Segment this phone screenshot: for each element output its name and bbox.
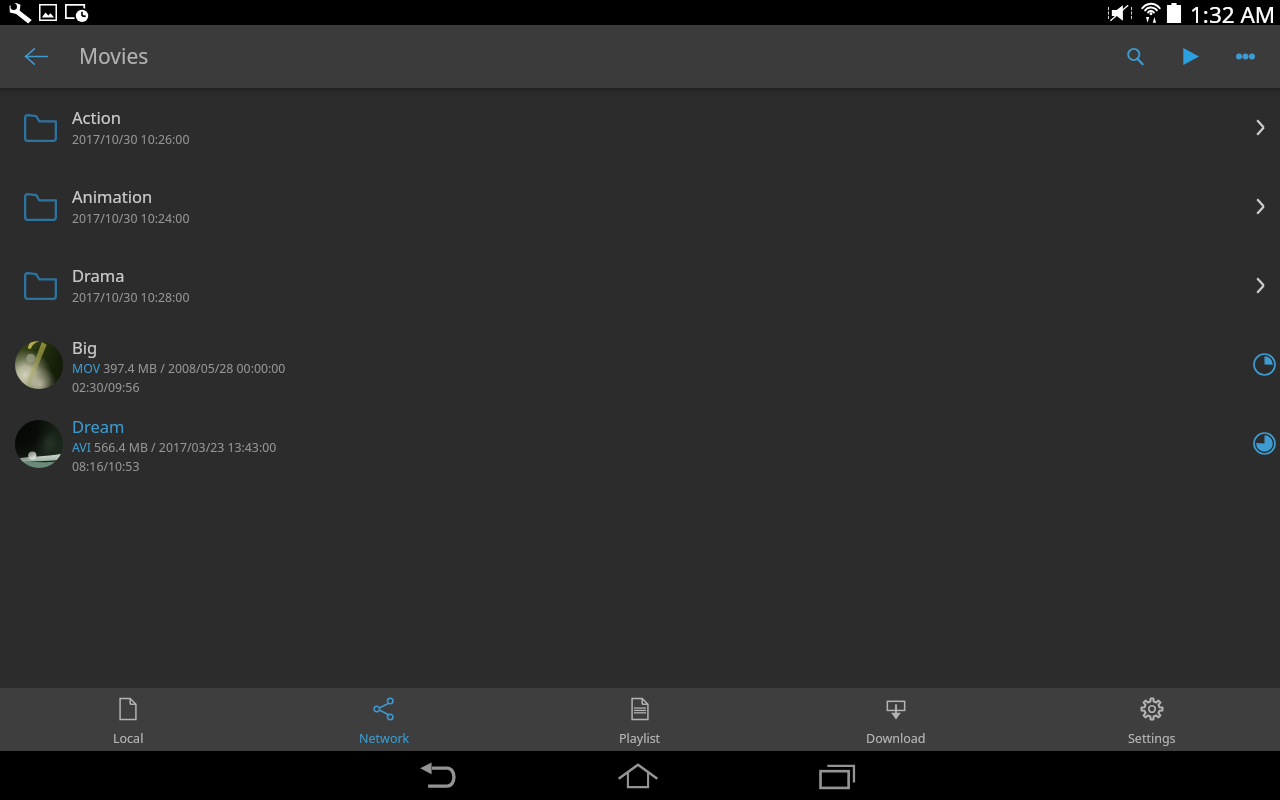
staticText: Movies	[79, 42, 149, 71]
button[interactable]: Play	[1156, 25, 1210, 88]
button[interactable]: Recent apps	[810, 751, 866, 800]
button[interactable]: Drama	[0, 246, 1280, 325]
button[interactable]: Back	[410, 751, 466, 800]
button[interactable]: Animation	[0, 167, 1280, 246]
button[interactable]: Dream	[0, 404, 1280, 483]
staticText: 2017/10/30 10:28:00	[72, 289, 190, 306]
button[interactable]: Playlist	[512, 688, 768, 751]
staticText: 2017/10/30 10:24:00	[72, 210, 190, 227]
button[interactable]: More options	[1210, 25, 1280, 88]
staticText: 2017/10/30 10:26:00	[72, 131, 190, 148]
staticText: Dream	[72, 415, 125, 437]
staticText: 08:16/10:53	[72, 458, 140, 475]
staticText: Animation	[72, 185, 153, 207]
staticText: Local	[113, 730, 144, 747]
staticText: AVI 566.4 MB / 2017/03/23 13:43:00	[72, 439, 277, 456]
staticText: 1:32 AM	[1190, 0, 1276, 24]
button[interactable]: Settings	[1024, 688, 1280, 751]
staticText: Playlist	[619, 730, 661, 747]
button[interactable]: Local	[0, 688, 256, 751]
button[interactable]: Network	[256, 688, 512, 751]
button[interactable]: Big	[0, 325, 1280, 404]
button[interactable]: Download	[768, 688, 1024, 751]
button[interactable]: Back	[0, 25, 62, 88]
staticText: Network	[359, 730, 410, 747]
staticText: Big	[72, 336, 98, 358]
staticText: 02:30/09:56	[72, 379, 140, 396]
staticText: Settings	[1128, 730, 1176, 747]
button[interactable]: Action	[0, 88, 1280, 167]
staticText: Download	[866, 730, 926, 747]
button[interactable]: Home	[610, 751, 666, 800]
staticText: Action	[72, 106, 121, 128]
staticText: Drama	[72, 264, 125, 286]
staticText: MOV 397.4 MB / 2008/05/28 00:00:00	[72, 360, 286, 377]
button[interactable]: Search	[1100, 25, 1156, 88]
